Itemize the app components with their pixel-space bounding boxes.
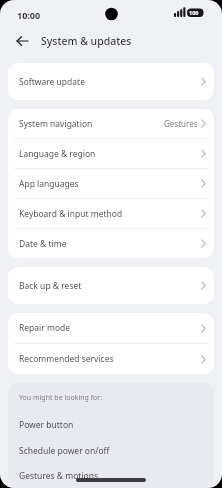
button[interactable]: Software update — [8, 63, 214, 100]
button[interactable]: Back up & reset — [8, 267, 214, 304]
staticText: Recommended services — [19, 353, 114, 365]
button[interactable] — [12, 31, 32, 51]
staticText: App languages — [19, 178, 79, 190]
staticText: Date & time — [19, 238, 67, 250]
staticText: Gestures & motions — [19, 470, 99, 482]
staticText: You might be looking for: — [19, 393, 103, 403]
button[interactable]: App languages — [8, 169, 214, 198]
staticText: Software update — [19, 76, 85, 88]
button[interactable]: Power button — [8, 412, 214, 438]
button[interactable]: Repair mode — [8, 313, 214, 343]
staticText: 10:00 — [17, 9, 41, 21]
staticText: Back up & reset — [19, 280, 82, 292]
button[interactable]: Language & region — [8, 139, 214, 168]
staticText: Schedule power on/off — [19, 445, 110, 457]
staticText: System & updates — [41, 34, 132, 48]
staticText: Gestures — [164, 118, 198, 129]
button[interactable]: Keyboard & input method — [8, 199, 214, 228]
button[interactable]: Recommended services — [8, 344, 214, 374]
staticText: Repair mode — [19, 322, 71, 334]
button[interactable]: System navigation — [8, 109, 214, 138]
staticText: Language & region — [19, 148, 96, 160]
button[interactable]: Date & time — [8, 229, 214, 258]
staticText: 100 — [189, 9, 199, 16]
staticText: System navigation — [19, 118, 93, 130]
staticText: Power button — [19, 419, 74, 431]
staticText: Keyboard & input method — [19, 208, 123, 220]
button[interactable]: Schedule power on/off — [8, 438, 214, 464]
button[interactable]: Gestures & motions — [8, 464, 214, 488]
